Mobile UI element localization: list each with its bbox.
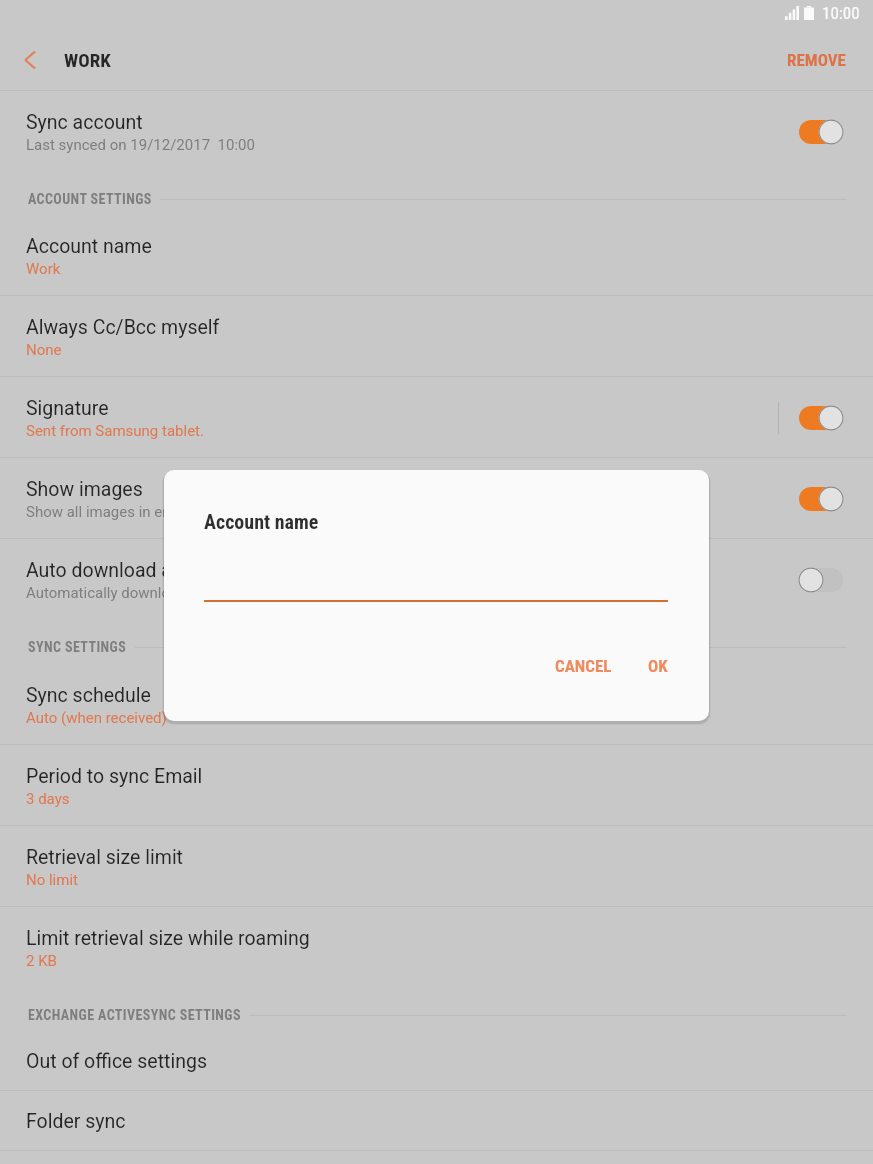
staticText: Out of office settings — [26, 1050, 207, 1073]
staticText: 3 days — [26, 790, 70, 808]
button[interactable]: Auto download attachments — [0, 539, 873, 620]
button[interactable]: REMOVE — [760, 30, 873, 90]
button[interactable]: Signature — [0, 377, 873, 458]
button[interactable]: Retrieval size limit — [0, 826, 873, 907]
staticText: Period to sync Email — [26, 765, 203, 788]
staticText: Auto (when received) — [26, 709, 167, 727]
button[interactable]: Account name input — [204, 560, 668, 602]
staticText: None — [26, 341, 62, 359]
staticText: 10:00 — [822, 3, 860, 23]
staticText: SYNC SETTINGS — [28, 639, 127, 655]
staticText: REMOVE — [787, 50, 846, 70]
button[interactable]: Folder sync — [0, 1091, 873, 1151]
staticText: Sync account — [26, 111, 143, 134]
staticText: Show all images in emails — [26, 503, 199, 521]
staticText: EXCHANGE ACTIVESYNC SETTINGS — [28, 1007, 241, 1023]
staticText: Work — [26, 260, 61, 278]
button[interactable]: OK — [636, 647, 680, 685]
staticText: ACCOUNT SETTINGS — [28, 191, 152, 207]
staticText: WORK — [64, 49, 111, 71]
staticText: No limit — [26, 871, 78, 889]
button[interactable]: Show images — [0, 458, 873, 539]
staticText: Folder sync — [26, 1110, 126, 1133]
button[interactable]: Period to sync Email — [0, 745, 873, 826]
staticText: Sync schedule — [26, 684, 151, 707]
staticText: Account name — [26, 235, 152, 258]
staticText: 2 KB — [26, 952, 57, 970]
button[interactable]: Account name — [0, 215, 873, 296]
button[interactable]: CANCEL — [543, 647, 624, 685]
staticText: Signature — [26, 397, 109, 420]
staticText: Account name — [204, 510, 319, 533]
staticText: Retrieval size limit — [26, 846, 183, 869]
staticText: Last synced on 19/12/2017 10:00 — [26, 136, 255, 154]
staticText: Show images — [26, 478, 143, 501]
button[interactable]: Limit retrieval size while roaming — [0, 907, 873, 988]
staticText: Always Cc/Bcc myself — [26, 316, 220, 339]
button[interactable]: Always Cc/Bcc myself — [0, 296, 873, 377]
staticText: CANCEL — [555, 656, 612, 676]
staticText: Sent from Samsung tablet. — [26, 422, 204, 440]
button[interactable]: Sync account — [0, 91, 873, 172]
staticText: Limit retrieval size while roaming — [26, 927, 310, 950]
button[interactable]: Out of office settings — [0, 1032, 873, 1091]
button[interactable]: Sync schedule — [0, 664, 873, 745]
button[interactable]: Navigate up — [0, 30, 62, 90]
staticText: Auto download attachments — [26, 559, 271, 582]
staticText: Automatically download attachments — [26, 584, 275, 602]
staticText: OK — [648, 656, 668, 676]
